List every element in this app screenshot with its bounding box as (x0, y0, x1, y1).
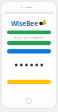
button[interactable]: Home (26, 98, 31, 104)
button[interactable] (7, 30, 51, 34)
button[interactable] (7, 41, 51, 45)
staticText: WiseBee (11, 19, 38, 28)
button[interactable] (7, 80, 51, 84)
button[interactable] (7, 49, 51, 53)
staticText: Forgot your password? (14, 36, 44, 39)
